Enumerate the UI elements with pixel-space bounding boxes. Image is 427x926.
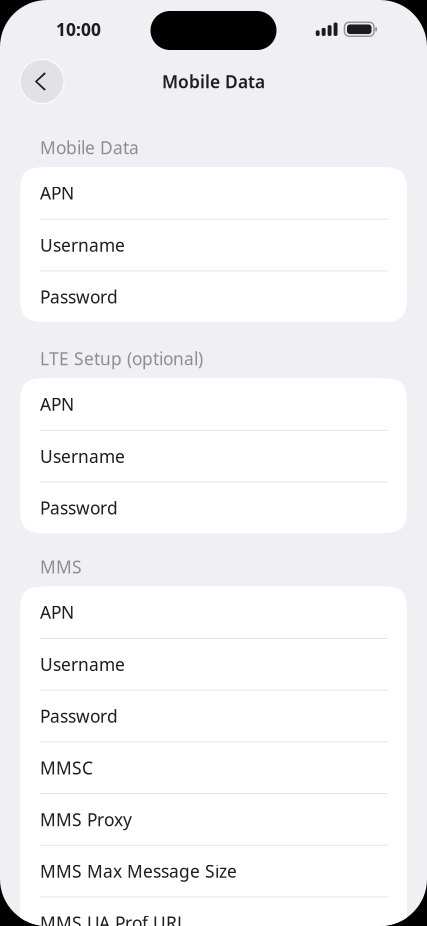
button[interactable]: APN xyxy=(20,378,407,431)
button[interactable]: APN xyxy=(20,167,407,220)
button[interactable]: Username xyxy=(20,639,407,691)
staticText: APN xyxy=(40,392,74,415)
button[interactable]: Password xyxy=(20,271,407,322)
staticText: Username xyxy=(40,234,125,257)
staticText: MMS UA Prof URL xyxy=(40,911,186,926)
button[interactable]: APN xyxy=(20,586,407,639)
button[interactable]: Username xyxy=(20,220,407,271)
staticText: 10:00 xyxy=(56,18,101,41)
staticText: MMSC xyxy=(40,756,93,779)
staticText: MMS Max Message Size xyxy=(40,860,237,883)
button[interactable]: MMS Max Message Size xyxy=(20,846,407,897)
staticText: APN xyxy=(40,181,74,204)
staticText: MMS Proxy xyxy=(40,808,132,831)
button[interactable]: Username xyxy=(20,431,407,482)
staticText: LTE Setup (optional) xyxy=(40,347,203,370)
staticText: MMS xyxy=(40,555,82,578)
button[interactable]: Password xyxy=(20,482,407,533)
button[interactable]: MMS UA Prof URL xyxy=(20,897,407,926)
staticText: Password xyxy=(40,496,118,519)
staticText: Username xyxy=(40,653,125,676)
staticText: APN xyxy=(40,601,74,624)
staticText: Mobile Data xyxy=(40,136,139,159)
button[interactable]: MMSC xyxy=(20,742,407,794)
staticText: Username xyxy=(40,445,125,468)
staticText: Password xyxy=(40,285,118,308)
button[interactable]: MMS Proxy xyxy=(20,794,407,846)
button[interactable]: Password xyxy=(20,691,407,742)
button[interactable]: Back xyxy=(19,59,64,104)
staticText: Password xyxy=(40,704,118,727)
staticText: Mobile Data xyxy=(162,70,265,93)
